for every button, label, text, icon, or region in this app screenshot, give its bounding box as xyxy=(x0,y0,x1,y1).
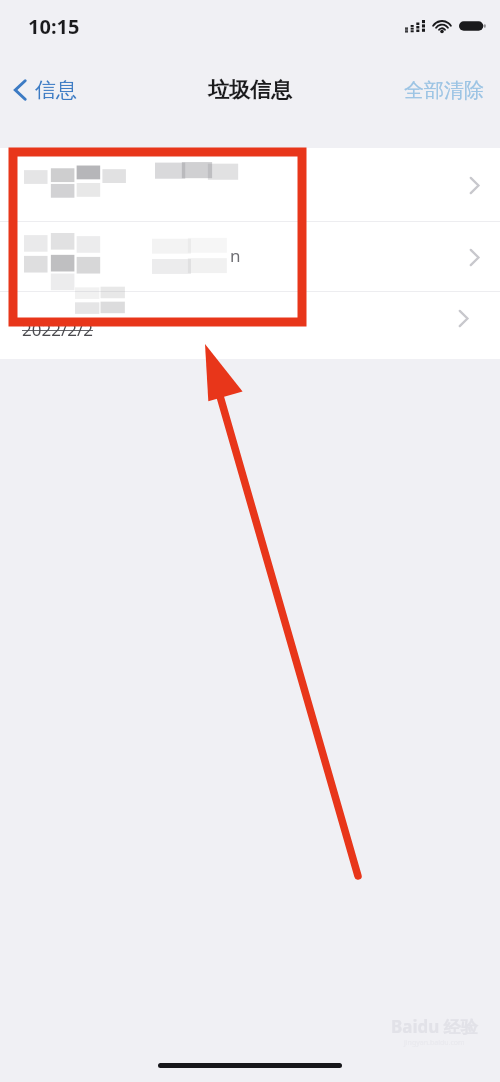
button[interactable]: 全部清除 xyxy=(388,70,500,111)
button[interactable] xyxy=(0,148,500,222)
staticText: Baidu 经验 xyxy=(391,1015,478,1038)
button[interactable]: 2022/2/2 xyxy=(0,292,500,359)
button[interactable]: 信息 xyxy=(0,71,89,109)
staticText: 信息 xyxy=(35,77,77,103)
staticText: 2022/2/2 xyxy=(22,318,93,341)
button[interactable]: n xyxy=(0,222,500,292)
other: Home indicator xyxy=(158,1063,342,1068)
staticText: 垃圾信息 xyxy=(208,77,292,103)
staticText: n xyxy=(230,244,241,267)
staticText: 10:15 xyxy=(28,13,80,40)
staticText: 全部清除 xyxy=(404,78,484,103)
